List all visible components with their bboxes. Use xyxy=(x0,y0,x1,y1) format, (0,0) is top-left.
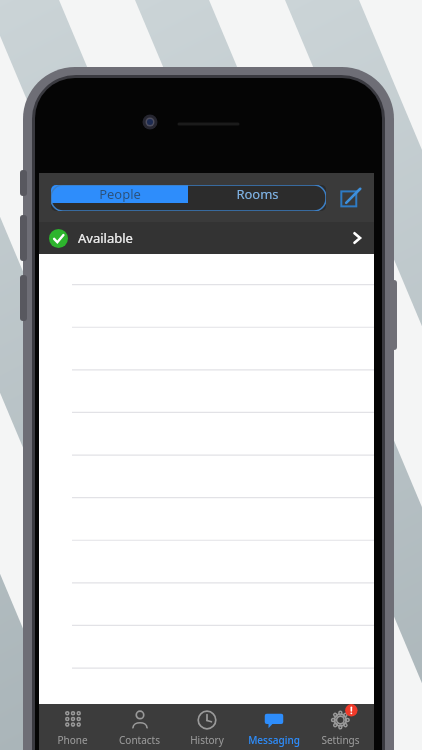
staticText: Contacts xyxy=(119,733,160,747)
button[interactable]: Messaging xyxy=(240,704,307,747)
staticText: Available xyxy=(78,229,133,247)
staticText: Messaging xyxy=(248,733,300,747)
staticText: People xyxy=(99,185,141,203)
staticText: Rooms xyxy=(236,185,279,203)
button[interactable]: Contacts xyxy=(106,704,173,747)
button[interactable]: Settings xyxy=(307,704,374,747)
staticText: History xyxy=(190,733,224,747)
staticText: Phone xyxy=(57,733,88,747)
staticText: Settings xyxy=(321,733,360,747)
button[interactable]: Available xyxy=(39,222,374,254)
button[interactable]: History xyxy=(173,704,240,747)
button[interactable]: People xyxy=(51,185,188,203)
button[interactable]: Compose message xyxy=(336,183,366,213)
button[interactable]: Rooms xyxy=(188,185,326,203)
button[interactable]: Phone xyxy=(39,704,106,747)
